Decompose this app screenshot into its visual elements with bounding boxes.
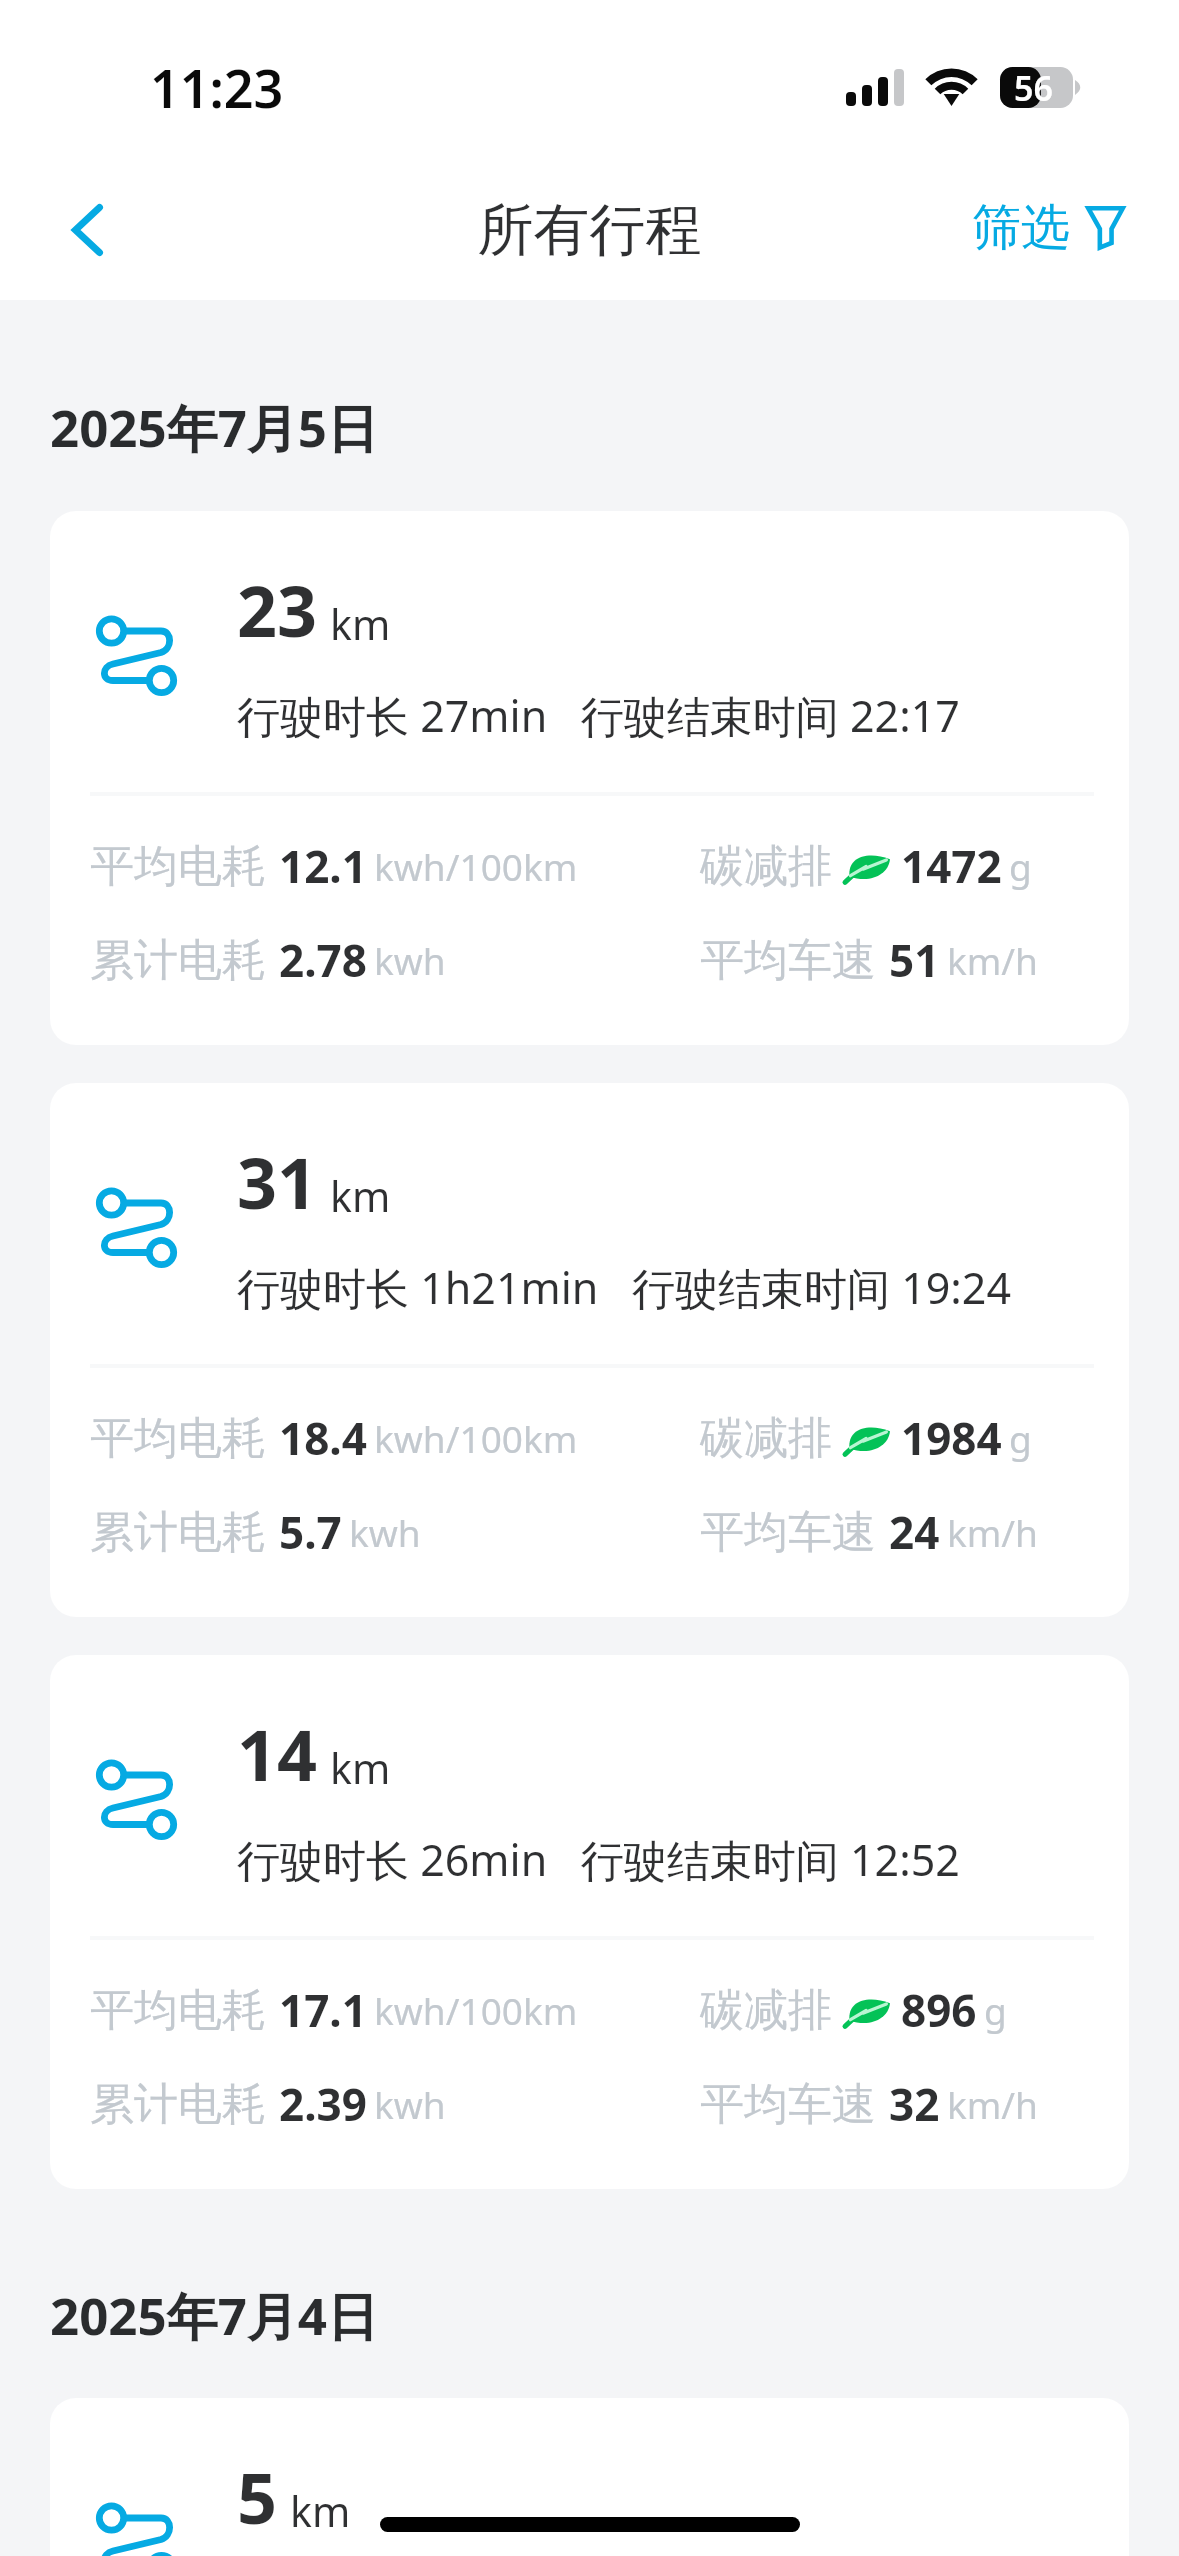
staticText: 累计电耗: [90, 2077, 266, 2132]
button[interactable]: 31: [50, 1083, 1129, 1617]
staticText: 51: [889, 930, 940, 990]
staticText: 11:23: [150, 52, 284, 123]
staticText: 平均电耗: [90, 839, 266, 894]
staticText: 2.78: [279, 930, 367, 990]
staticText: 平均电耗: [90, 1983, 266, 2038]
button[interactable]: 14: [50, 1655, 1129, 2189]
staticText: 累计电耗: [90, 1505, 266, 1560]
staticText: km: [330, 1740, 391, 1796]
staticText: 24: [889, 1502, 940, 1562]
staticText: kwh/100km: [374, 1985, 578, 2035]
staticText: 14: [237, 1706, 318, 1801]
staticText: 平均车速: [700, 933, 876, 988]
staticText: 1472: [901, 836, 1002, 896]
button[interactable]: 5: [50, 2398, 1129, 2556]
staticText: 32: [889, 2074, 940, 2134]
staticText: km/h: [947, 935, 1038, 985]
staticText: 17.1: [279, 1980, 367, 2040]
staticText: 所有行程: [0, 195, 1179, 266]
staticText: 1984: [901, 1408, 1002, 1468]
staticText: 行驶时长 26min 行驶结束时间 12:52: [237, 1830, 960, 1889]
staticText: km/h: [947, 2079, 1038, 2129]
staticText: km: [290, 2483, 351, 2539]
staticText: 累计电耗: [90, 933, 266, 988]
staticText: 碳减排: [700, 839, 832, 894]
staticText: 平均车速: [700, 1505, 876, 1560]
staticText: 5.7: [279, 1502, 342, 1562]
button[interactable]: 筛选: [972, 180, 1125, 276]
staticText: 碳减排: [700, 1411, 832, 1466]
staticText: 碳减排: [700, 1983, 832, 2038]
staticText: km/h: [947, 1507, 1038, 1557]
staticText: kwh: [349, 1507, 421, 1557]
staticText: 行驶时长 27min 行驶结束时间 22:17: [237, 686, 960, 745]
staticText: 23: [237, 562, 318, 657]
staticText: 12.1: [279, 836, 367, 896]
staticText: kwh: [374, 935, 446, 985]
staticText: 平均车速: [700, 2077, 876, 2132]
staticText: km: [330, 1168, 391, 1224]
staticText: 5: [237, 2449, 278, 2544]
staticText: 2025年7月4日: [50, 2280, 379, 2350]
staticText: km: [330, 596, 391, 652]
staticText: g: [1009, 841, 1032, 891]
staticText: 2.39: [279, 2074, 367, 2134]
staticText: 896: [901, 1980, 977, 2040]
staticText: kwh: [374, 2079, 446, 2129]
staticText: 行驶时长 1h21min 行驶结束时间 19:24: [237, 1258, 1012, 1317]
button[interactable]: 23: [50, 511, 1129, 1045]
button[interactable]: Back: [32, 175, 142, 285]
staticText: g: [984, 1985, 1007, 2035]
staticText: 筛选: [972, 197, 1070, 259]
staticText: 56: [1014, 65, 1053, 111]
staticText: 18.4: [279, 1408, 367, 1468]
staticText: kwh/100km: [374, 1413, 578, 1463]
staticText: 2025年7月5日: [50, 392, 379, 462]
staticText: g: [1009, 1413, 1032, 1463]
staticText: kwh/100km: [374, 841, 578, 891]
staticText: 平均电耗: [90, 1411, 266, 1466]
staticText: 31: [237, 1134, 318, 1229]
